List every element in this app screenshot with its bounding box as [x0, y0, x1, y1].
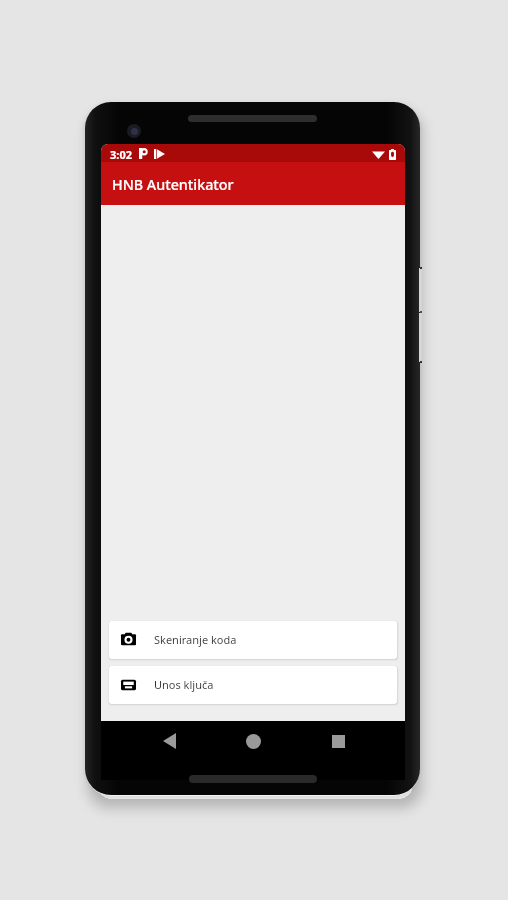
button[interactable]: Back	[152, 724, 186, 758]
staticText: HNB Autentikator	[112, 175, 234, 194]
staticText: Skeniranje koda	[154, 632, 237, 647]
button[interactable]: Unos ključa	[109, 666, 397, 704]
button[interactable]: Skeniranje koda	[109, 621, 397, 659]
button[interactable]: Recents	[321, 724, 355, 758]
staticText: 3:02	[110, 147, 132, 162]
staticText: Unos ključa	[154, 677, 214, 692]
button[interactable]: Home	[236, 724, 270, 758]
